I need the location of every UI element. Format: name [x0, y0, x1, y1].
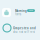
staticText: also nat self rest — [13, 30, 35, 34]
staticText: farms — [15, 12, 21, 16]
staticText: save — [29, 10, 33, 11]
staticText: Morning — [15, 9, 27, 13]
button[interactable]: save — [27, 9, 35, 12]
staticText: Grapes tea and — [13, 26, 36, 30]
